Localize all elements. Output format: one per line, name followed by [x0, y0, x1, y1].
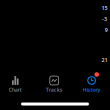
- button[interactable]: Tracks: [38, 69, 70, 95]
- staticText: 15: [101, 4, 107, 12]
- staticText: -3: [102, 15, 107, 23]
- staticText: History: [83, 86, 101, 93]
- staticText: Chart: [9, 86, 22, 93]
- button[interactable]: History: [76, 69, 108, 95]
- staticText: 21: [101, 56, 107, 64]
- staticText: 9: [105, 26, 108, 34]
- button[interactable]: Chart: [0, 69, 31, 95]
- staticText: Tracks: [46, 86, 63, 93]
